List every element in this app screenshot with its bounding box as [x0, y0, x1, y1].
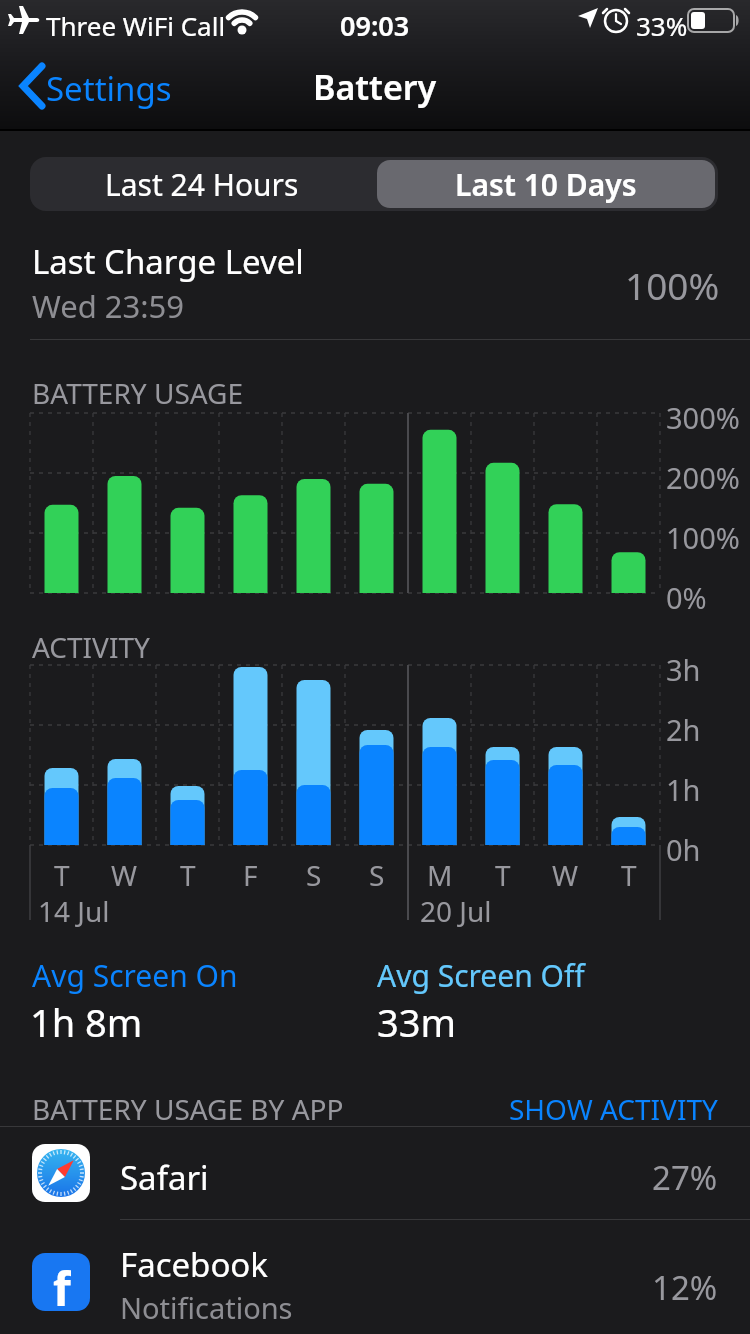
- button[interactable]: f: [0, 1220, 750, 1334]
- staticText: 0h: [666, 830, 701, 869]
- staticText: T: [495, 856, 511, 894]
- staticText: Safari: [120, 1155, 209, 1200]
- staticText: Three WiFi Call: [46, 8, 226, 43]
- staticText: 200%: [666, 458, 740, 497]
- staticText: T: [180, 856, 196, 894]
- staticText: 100%: [625, 260, 720, 310]
- staticText: S: [306, 856, 322, 894]
- staticText: Avg Screen Off: [377, 955, 585, 996]
- staticText: BATTERY USAGE: [32, 374, 244, 412]
- staticText: ACTIVITY: [32, 628, 150, 666]
- staticText: Battery: [313, 64, 437, 110]
- staticText: 20 Jul: [420, 892, 492, 930]
- button[interactable]: SHOW ACTIVITY: [0, 1090, 718, 1128]
- staticText: T: [54, 856, 70, 894]
- staticText: 14 Jul: [38, 892, 110, 930]
- staticText: 0%: [666, 578, 707, 617]
- button[interactable]: Last 10 Days: [374, 157, 718, 211]
- staticText: 33%: [636, 8, 688, 43]
- staticText: f: [53, 1257, 71, 1311]
- staticText: M: [427, 856, 453, 894]
- staticText: 27%: [652, 1155, 718, 1200]
- button[interactable]: Safari: [0, 1127, 750, 1219]
- staticText: Avg Screen On: [32, 955, 238, 996]
- staticText: W: [552, 856, 579, 894]
- staticText: T: [621, 856, 637, 894]
- staticText: 300%: [666, 398, 740, 437]
- staticText: 1h 8m: [30, 996, 143, 1048]
- staticText: 09:03: [340, 7, 410, 44]
- staticText: Wed 23:59: [32, 285, 185, 327]
- staticText: 12%: [652, 1265, 718, 1310]
- staticText: 3h: [666, 650, 701, 689]
- staticText: 2h: [666, 710, 701, 749]
- staticText: SHOW ACTIVITY: [509, 1090, 718, 1128]
- staticText: 100%: [666, 518, 740, 557]
- staticText: 1h: [666, 770, 701, 809]
- staticText: 33m: [377, 996, 457, 1048]
- staticText: Last 10 Days: [455, 164, 637, 205]
- staticText: Notifications: [120, 1288, 293, 1327]
- button[interactable]: Last 24 Hours: [30, 157, 374, 211]
- staticText: Last 24 Hours: [105, 164, 299, 205]
- staticText: F: [243, 856, 258, 894]
- staticText: Settings: [46, 66, 172, 111]
- staticText: Facebook: [120, 1242, 268, 1287]
- staticText: S: [369, 856, 385, 894]
- button[interactable]: Settings: [18, 58, 218, 114]
- staticText: BATTERY USAGE BY APP: [32, 1090, 344, 1128]
- staticText: Last Charge Level: [32, 239, 304, 284]
- staticText: W: [111, 856, 138, 894]
